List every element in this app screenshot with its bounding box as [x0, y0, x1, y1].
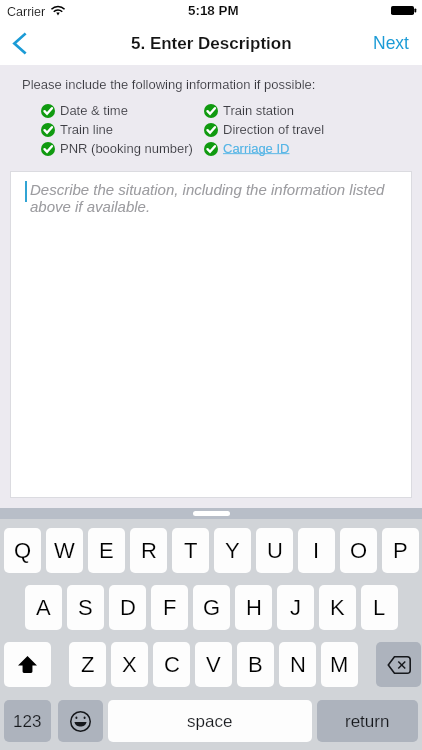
button[interactable]: Direction of travel: [204, 120, 325, 139]
staticText: T: [184, 538, 198, 563]
staticText: H: [246, 595, 262, 620]
staticText: W: [54, 538, 75, 563]
staticText: U: [267, 538, 283, 563]
button[interactable]: F: [151, 585, 188, 630]
staticText: C: [164, 652, 180, 677]
staticText: S: [78, 595, 93, 620]
staticText: Z: [81, 652, 95, 677]
button[interactable]: D: [109, 585, 146, 630]
button[interactable]: B: [237, 642, 274, 687]
staticText: B: [248, 652, 263, 677]
button[interactable]: T: [172, 528, 209, 573]
staticText: 5. Enter Description: [131, 34, 292, 53]
staticText: PNR (booking number): [60, 141, 193, 156]
button[interactable]: H: [235, 585, 272, 630]
staticText: space: [187, 712, 233, 731]
staticText: P: [393, 538, 408, 563]
button[interactable]: Emoji: [58, 700, 103, 742]
staticText: A: [36, 595, 51, 620]
button[interactable]: return: [317, 700, 418, 742]
staticText: 5:18 PM: [188, 3, 239, 18]
button[interactable]: C: [153, 642, 190, 687]
button[interactable]: S: [67, 585, 104, 630]
staticText: Carrier: [7, 5, 46, 19]
button[interactable]: I: [298, 528, 335, 573]
button[interactable]: Backspace: [376, 642, 421, 687]
staticText: G: [203, 595, 221, 620]
button[interactable]: L: [361, 585, 398, 630]
button[interactable]: N: [279, 642, 316, 687]
button[interactable]: V: [195, 642, 232, 687]
staticText: X: [122, 652, 137, 677]
button[interactable]: K: [319, 585, 356, 630]
button[interactable]: G: [193, 585, 230, 630]
staticText: Train line: [60, 122, 113, 137]
staticText: E: [99, 538, 114, 563]
button[interactable]: A: [25, 585, 62, 630]
staticText: Carriage ID: [223, 141, 290, 156]
staticText: V: [206, 652, 221, 677]
staticText: L: [373, 595, 386, 620]
staticText: Next: [373, 33, 409, 53]
button[interactable]: X: [111, 642, 148, 687]
staticText: N: [290, 652, 306, 677]
staticText: Please include the following information…: [22, 77, 316, 92]
staticText: Y: [225, 538, 240, 563]
staticText: Date & time: [60, 103, 128, 118]
button[interactable]: O: [340, 528, 377, 573]
button[interactable]: Z: [69, 642, 106, 687]
staticText: J: [290, 595, 301, 620]
staticText: 123: [13, 712, 42, 731]
staticText: Q: [14, 538, 32, 563]
button[interactable]: space: [108, 700, 312, 742]
staticText: D: [120, 595, 136, 620]
button[interactable]: Next: [359, 25, 422, 64]
staticText: Train station: [223, 103, 295, 118]
button[interactable]: J: [277, 585, 314, 630]
button[interactable]: W: [46, 528, 83, 573]
button[interactable]: Y: [214, 528, 251, 573]
button[interactable]: PNR (booking number): [41, 139, 193, 158]
button[interactable]: Train line: [41, 120, 113, 139]
staticText: Describe the situation, including the in…: [30, 181, 385, 215]
staticText: O: [350, 538, 368, 563]
button[interactable]: Carriage ID: [204, 139, 290, 158]
staticText: return: [345, 712, 390, 731]
button[interactable]: M: [321, 642, 358, 687]
button[interactable]: E: [88, 528, 125, 573]
button[interactable]: Date & time: [41, 101, 128, 120]
staticText: K: [330, 595, 345, 620]
button[interactable]: Shift: [4, 642, 51, 687]
staticText: R: [141, 538, 157, 563]
staticText: Direction of travel: [223, 122, 325, 137]
button[interactable]: Back: [0, 23, 40, 64]
staticText: I: [313, 538, 320, 563]
staticText: F: [163, 595, 177, 620]
button[interactable]: R: [130, 528, 167, 573]
button[interactable]: 123: [4, 700, 51, 742]
button[interactable]: Train station: [204, 101, 295, 120]
button[interactable]: U: [256, 528, 293, 573]
button[interactable]: P: [382, 528, 419, 573]
button[interactable]: Describe the situation, including the in…: [10, 171, 412, 498]
staticText: M: [330, 652, 349, 677]
button[interactable]: Q: [4, 528, 41, 573]
